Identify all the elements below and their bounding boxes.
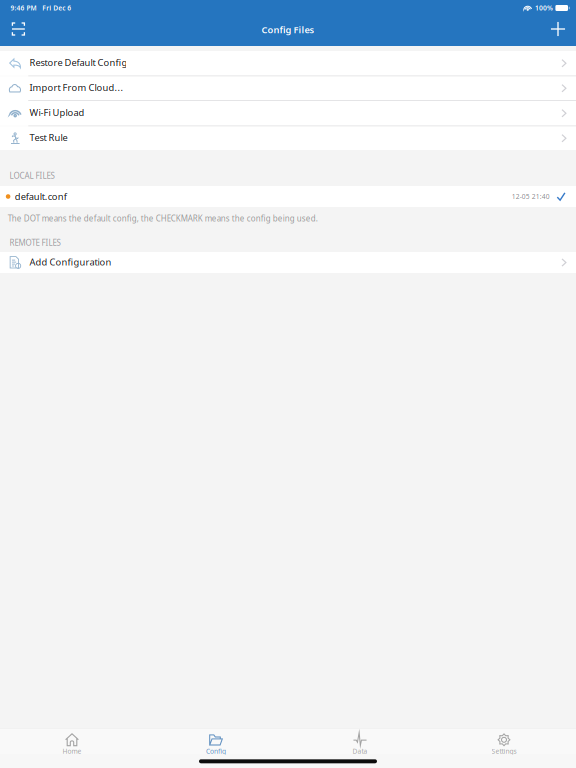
staticText: Data (352, 747, 367, 756)
button[interactable]: Config (144, 729, 288, 755)
staticText: Config Files (261, 24, 314, 36)
staticText: Test Rule (29, 131, 67, 144)
staticText: Config (206, 747, 226, 756)
button[interactable]: Restore Default Config (0, 51, 576, 75)
staticText: REMOTE FILES (9, 237, 60, 248)
staticText: 9:46 PM (11, 4, 37, 12)
button[interactable]: Import From Cloud... (0, 76, 576, 100)
staticText: Restore Default Config (29, 56, 127, 69)
staticText: Add Configuration (29, 256, 111, 268)
button[interactable]: Scan (3, 14, 33, 48)
staticText: The DOT means the default config, the CH… (8, 213, 318, 224)
button[interactable]: Settings (432, 729, 576, 755)
button[interactable]: Add Configuration (0, 252, 576, 273)
button[interactable]: Data (288, 729, 432, 755)
staticText: Wi-Fi Upload (29, 106, 84, 119)
staticText: 100% (535, 4, 553, 12)
button[interactable]: Add (543, 14, 573, 48)
staticText: 12-05 21:40 (512, 192, 550, 201)
staticText: Fri Dec 6 (42, 4, 71, 12)
button[interactable]: Wi-Fi Upload (0, 101, 576, 125)
staticText: Home (62, 747, 81, 756)
staticText: Settings (491, 747, 516, 756)
staticText: default.conf (15, 190, 67, 203)
button[interactable]: Home (0, 729, 144, 755)
staticText: Import From Cloud... (29, 81, 123, 94)
button[interactable]: default.conf (0, 186, 576, 207)
staticText: LOCAL FILES (9, 170, 54, 181)
button[interactable]: Test Rule (0, 126, 576, 150)
